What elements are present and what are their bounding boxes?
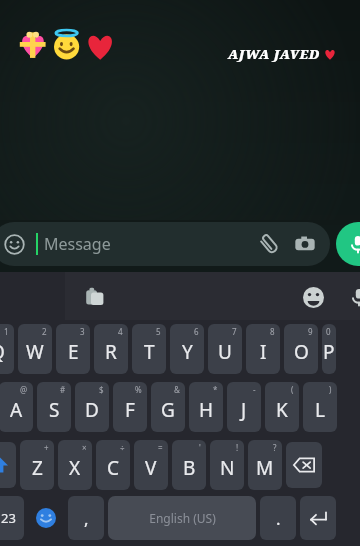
button[interactable]: Comma — [68, 496, 104, 540]
staticText: 6 — [194, 326, 199, 337]
staticText: E — [68, 339, 79, 365]
button[interactable]: 0 — [322, 324, 336, 374]
button[interactable]: English (US) — [108, 496, 256, 540]
button[interactable]: Shift — [0, 442, 16, 488]
button[interactable]: 8 — [246, 324, 280, 374]
staticText: ! — [236, 442, 239, 453]
button[interactable]: # — [37, 382, 71, 432]
button[interactable]: Backspace — [286, 442, 322, 488]
button[interactable]: - — [227, 382, 261, 432]
button[interactable]: 9 — [284, 324, 318, 374]
button[interactable]: Voice message — [336, 222, 360, 266]
staticText: ' — [199, 442, 201, 453]
staticText: 1 — [4, 326, 9, 337]
button[interactable]: Symbols — [0, 496, 24, 540]
staticText: , — [84, 507, 89, 530]
staticText: English (US) — [149, 510, 216, 526]
staticText: X — [69, 455, 81, 481]
button[interactable]: * — [189, 382, 223, 432]
staticText: * — [213, 384, 218, 395]
staticText: @ — [20, 384, 28, 395]
button[interactable]: × — [58, 440, 92, 490]
button[interactable]: Emoji — [0, 222, 330, 266]
button[interactable]: Clipboard — [82, 284, 108, 310]
button[interactable]: @ — [0, 382, 33, 432]
button[interactable]: 4 — [94, 324, 128, 374]
staticText: . — [276, 507, 281, 530]
button[interactable]: 2 — [18, 324, 52, 374]
staticText: ?123 — [0, 509, 16, 527]
staticText: A — [10, 397, 23, 423]
staticText: + — [44, 442, 49, 453]
button[interactable]: % — [113, 382, 147, 432]
staticText: 5 — [156, 326, 161, 337]
staticText: F — [125, 397, 135, 423]
staticText: I — [260, 339, 267, 365]
staticText: Z — [32, 455, 43, 481]
staticText: Message — [44, 233, 254, 255]
staticText: T — [144, 339, 155, 365]
staticText: Q — [0, 339, 5, 365]
button[interactable]: & — [151, 382, 185, 432]
button[interactable]: AJWA JAVED — [228, 45, 336, 63]
button[interactable]: Camera — [290, 229, 320, 259]
staticText: D — [85, 397, 99, 423]
button[interactable]: + — [20, 440, 54, 490]
staticText: B — [183, 455, 196, 481]
staticText: ÷ — [120, 442, 125, 453]
staticText: W — [26, 339, 44, 365]
staticText: Y — [182, 339, 193, 365]
staticText: 2 — [42, 326, 47, 337]
staticText: 7 — [232, 326, 237, 337]
staticText: # — [60, 384, 66, 395]
staticText: AJWA JAVED — [228, 45, 320, 63]
staticText: P — [323, 339, 335, 365]
button[interactable]: ) — [303, 382, 337, 432]
button[interactable]: 3 — [56, 324, 90, 374]
button[interactable]: ' — [172, 440, 206, 490]
staticText: H — [199, 397, 214, 423]
staticText: G — [161, 397, 175, 423]
button[interactable]: Attach — [254, 229, 284, 259]
staticText: % — [135, 384, 142, 395]
button[interactable]: ! — [210, 440, 244, 490]
staticText: 4 — [118, 326, 123, 337]
staticText: ? — [273, 442, 277, 453]
staticText: K — [276, 397, 288, 423]
button[interactable]: Emoji — [28, 496, 64, 540]
button[interactable]: ? — [248, 440, 282, 490]
staticText: 0 — [326, 326, 331, 337]
button[interactable]: Voice input — [346, 284, 360, 310]
staticText: 3 — [80, 326, 85, 337]
staticText: M — [256, 455, 274, 481]
staticText: ( — [291, 384, 294, 395]
button[interactable]: Enter — [300, 496, 336, 540]
button[interactable]: ÷ — [96, 440, 130, 490]
staticText: & — [174, 384, 180, 395]
staticText: ) — [329, 384, 332, 395]
button[interactable]: ( — [265, 382, 299, 432]
button[interactable]: Emoji — [2, 232, 26, 256]
staticText: - — [253, 384, 256, 395]
button[interactable]: = — [134, 440, 168, 490]
button[interactable]: $ — [75, 382, 109, 432]
staticText: R — [105, 339, 117, 365]
staticText: $ — [99, 384, 104, 395]
staticText: J — [241, 397, 247, 423]
staticText: 9 — [308, 326, 313, 337]
button[interactable]: 6 — [170, 324, 204, 374]
staticText: 8 — [270, 326, 275, 337]
button[interactable]: 7 — [208, 324, 242, 374]
staticText: N — [220, 455, 235, 481]
staticText: × — [82, 442, 87, 453]
staticText: L — [315, 397, 325, 423]
staticText: U — [218, 339, 232, 365]
staticText: = — [158, 442, 163, 453]
staticText: S — [49, 397, 60, 423]
button[interactable]: 1 — [0, 324, 14, 374]
button[interactable]: Emoji keyboard — [300, 284, 326, 310]
staticText: C — [107, 455, 120, 481]
staticText: V — [145, 455, 157, 481]
button[interactable]: Period — [260, 496, 296, 540]
button[interactable]: 5 — [132, 324, 166, 374]
